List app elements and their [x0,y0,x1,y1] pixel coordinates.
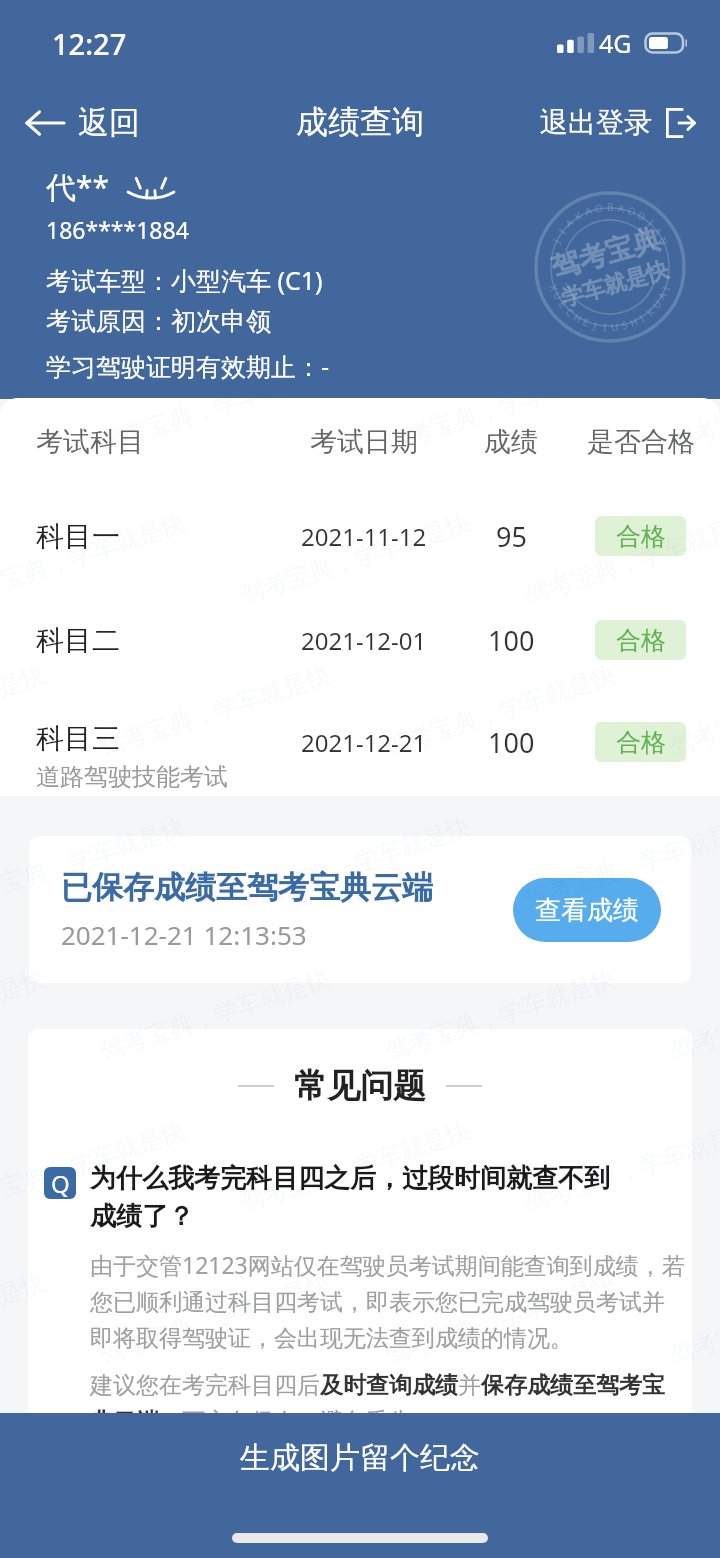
staticText: 2021-12-21 12:13:53 [61,917,307,952]
staticText: 驾考宝典，学车就是快 [0,1116,189,1218]
staticText: 由于交管12123网站仅在驾驶员考试期间能查询到成绩，若 您已顺利通过科目四考试… [90,1249,690,1353]
staticText: A [583,203,594,219]
staticText: 驾考宝典，学车就是快 [666,660,720,762]
staticText: B [607,200,614,214]
staticText: N [656,234,672,248]
staticText: 学车就是快 [558,256,672,313]
staticText: 12:27 [52,24,127,63]
staticText: I [555,225,569,237]
staticText: 考试原因：初次申领 [46,306,271,337]
staticText: 驾考宝典，学车就是快 [96,1268,334,1370]
staticText: 4G [599,26,632,60]
staticText: 100 [488,724,535,761]
staticText: 合格 [616,625,666,656]
staticText: 驾考宝典，学车就是快 [236,812,474,914]
staticText: 合格 [616,727,666,758]
staticText: 驾考宝典，学车就是快 [666,1268,720,1370]
staticText: 科目一 [36,519,120,554]
button[interactable]: 返回 [0,97,152,148]
staticText: 成绩 [484,425,538,459]
button[interactable]: 查看成绩 [513,878,661,942]
button[interactable]: 生成图片留个纪念 [0,1413,720,1558]
staticText: 驾考宝典，学车就是快 [521,508,720,610]
staticText: O [626,203,638,219]
staticText: A [562,215,577,230]
staticText: H [571,310,585,326]
staticText: 代** [46,166,110,207]
staticText: 道路驾驶技能考试 [36,762,228,792]
staticText: O [594,200,604,216]
staticText: J [592,318,599,332]
staticText: 驾考宝典，学车就是快 [521,1116,720,1218]
staticText: 驾考宝典，学车就是快 [381,398,619,458]
staticText: 驾考宝典，学车就是快 [96,660,334,762]
staticText: I [645,216,657,229]
staticText: I [659,284,673,292]
other: Log out [666,108,694,138]
staticText: A [654,289,670,302]
staticText: X [546,283,562,293]
staticText: 驾考宝典，学车就是快 [381,964,619,1066]
staticText: 驾考宝典，学车就是快 [381,1268,619,1370]
staticText: 驾考宝典，学车就是快 [0,508,189,610]
staticText: Q [51,1167,70,1199]
staticText: 建议您在考完科目四后及时查询成绩并保存成绩至驾考宝 典云端，可永久保存，避免丢失… [90,1371,690,1436]
button[interactable]: 科目一 [0,484,720,588]
staticText: 驾考宝典，学车就是快 [381,660,619,762]
staticText: 查看成绩 [535,894,639,927]
staticText: 驾考宝典，学车就是快 [521,812,720,914]
staticText: 2021-11-12 [301,520,427,553]
staticText: 驾考宝典 [547,221,665,285]
staticText: K [643,304,658,319]
staticText: 2021-12-21 [301,726,427,759]
staticText: 科目三 [36,721,120,756]
staticText: 驾考宝典，学车就是快 [666,398,720,458]
button[interactable]: Show full name [132,176,170,198]
staticText: U [649,296,665,311]
staticText: 驾考宝典，学车就是快 [96,398,334,458]
staticText: 95 [496,518,527,555]
staticText: 是否合格 [587,425,695,459]
staticText: A [651,224,666,238]
button[interactable]: 退出登录 [532,99,720,146]
staticText: 学习驾驶证明有效期止：- [46,349,330,383]
staticText: E [556,297,570,311]
staticText: 科目二 [36,623,120,658]
staticText: 退出登录 [540,105,652,140]
staticText: E [580,314,592,330]
staticText: 186****1884 [46,214,189,245]
button[interactable]: 科目二 [0,588,720,692]
staticText: 驾考宝典，学车就是快 [666,964,720,1066]
staticText: 驾考宝典，学车就是快 [0,964,49,1066]
staticText: J [549,236,563,245]
staticText: H [628,314,640,330]
button[interactable]: 科目三 [0,690,720,794]
staticText: 成绩查询 [296,102,424,142]
staticText: 为什么我考完科目四之后，过段时间就查不到成绩了？ [90,1162,626,1233]
staticText: 已保存成绩至驾考宝典云端 [61,868,433,907]
staticText: 驾考宝典，学车就是快 [0,812,189,914]
staticText: 驾考宝典，学车就是快 [236,1116,474,1218]
staticText: 驾考宝典，学车就是快 [0,660,49,762]
staticText: U [550,289,566,303]
staticText: 2021-12-01 [301,624,427,657]
staticText: U [610,320,619,334]
staticText: I [636,311,647,325]
staticText: 考试日期 [310,425,418,459]
staticText: K [572,208,585,223]
staticText: 驾考宝典，学车就是快 [96,964,334,1066]
staticText: 考试科目 [36,425,144,459]
staticText: D [635,208,649,224]
staticText: C [563,305,578,320]
staticText: 驾考宝典，学车就是快 [236,508,474,610]
staticText: 返回 [78,103,140,142]
staticText: 考试车型：小型汽车 (C1) [46,263,323,297]
staticText: 常见问题 [294,1065,426,1107]
staticText: 驾考宝典，学车就是快 [0,398,49,458]
staticText: 100 [488,622,535,659]
staticText: I [602,320,607,334]
staticText: 合格 [616,521,666,552]
staticText: S [620,317,630,332]
staticText: A [617,201,626,216]
staticText: 生成图片留个纪念 [240,1439,480,1477]
